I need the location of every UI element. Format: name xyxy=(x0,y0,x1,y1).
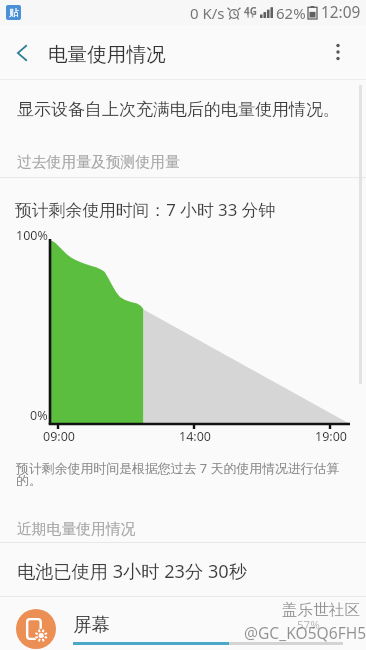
staticText: 贴 xyxy=(9,6,19,19)
staticText: 19:00 xyxy=(315,428,347,445)
staticText: 4G xyxy=(244,4,257,18)
staticText: 过去使用量及预测使用量 xyxy=(17,153,180,172)
staticText: @GC_KO5Q6FH5 xyxy=(244,622,366,643)
staticText: 100% xyxy=(16,227,48,244)
staticText: 57% xyxy=(297,617,320,633)
button[interactable]: 屏幕 xyxy=(0,597,366,650)
staticText: 0 K/s xyxy=(190,3,225,23)
button[interactable]: Back xyxy=(0,31,44,75)
staticText: 盖乐世社区 xyxy=(282,600,360,620)
staticText: 预计剩余使用时间：7 小时 33 分钟 xyxy=(15,198,276,221)
staticText: 电量使用情况 xyxy=(48,42,166,67)
staticText: 12:09 xyxy=(321,2,361,23)
staticText: 62% xyxy=(276,3,306,23)
staticText: 0% xyxy=(30,407,48,424)
staticText: 电池已使用 3小时 23分 30秒 xyxy=(17,559,247,584)
staticText: 屏幕 xyxy=(73,613,111,636)
staticText: 预计剩余使用时间是根据您过去 7 天的使用情况进行估算 xyxy=(16,459,340,477)
staticText: 显示设备自上次充满电后的电量使用情况。 xyxy=(17,99,340,120)
staticText: 近期电量使用情况 xyxy=(17,520,136,539)
button[interactable]: More options xyxy=(314,28,362,76)
staticText: 14:00 xyxy=(179,428,211,445)
staticText: 09:00 xyxy=(43,428,75,445)
staticText: 的。 xyxy=(16,473,42,489)
